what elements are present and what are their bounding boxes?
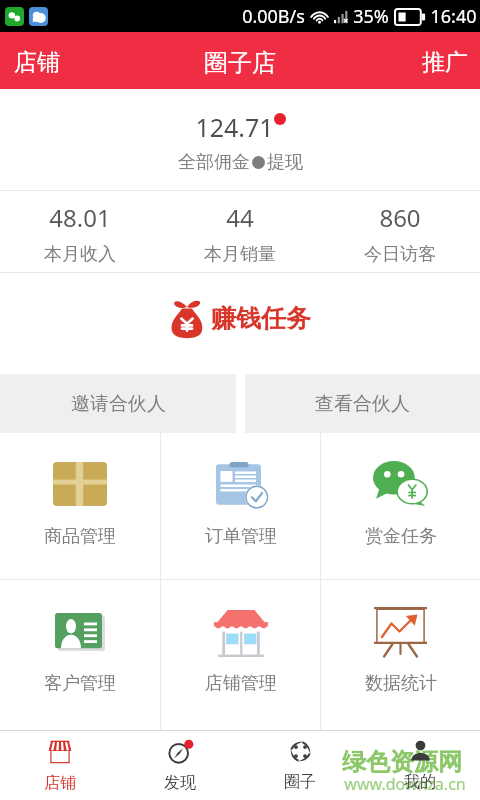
staticText: 数据统计 [365,672,437,695]
button[interactable]: 商品管理 [0,433,160,579]
button[interactable]: 邀请合伙人 [0,374,236,433]
button[interactable]: 发现 [120,731,240,800]
button[interactable]: 数据统计 [321,580,480,730]
staticText: 店铺 [44,773,76,793]
staticText: 48.01 [49,201,111,234]
staticText: 圈子店 [204,48,276,78]
button[interactable]: 店铺 [0,731,120,800]
button[interactable]: 44 [160,191,320,272]
staticText: 今日访客 [364,243,436,266]
staticText: 推广 [422,48,468,77]
button[interactable]: 全部佣金 [178,151,303,174]
staticText: 邀请合伙人 [71,392,166,416]
button[interactable]: 推广 [408,32,480,89]
button[interactable]: 我的 [360,731,480,800]
button[interactable]: 店铺 [0,32,74,89]
staticText: 提现 [267,151,303,174]
button[interactable]: 客户管理 [0,580,160,730]
button[interactable]: 赚钱任务 [151,287,329,351]
staticText: 商品管理 [44,525,116,548]
staticText: 35% [353,4,389,29]
staticText: 124.71 [195,110,274,144]
button[interactable]: 赏金任务 [321,433,480,579]
staticText: 店铺 [14,48,60,77]
staticText: 赏金任务 [365,525,437,548]
staticText: 店铺管理 [205,672,277,695]
staticText: 0.00B/s [242,4,305,29]
button[interactable]: 860 [320,191,480,272]
staticText: 客户管理 [44,672,116,695]
staticText: 绿色资源网 [342,747,462,777]
staticText: www.downza.cn [344,773,466,795]
staticText: 860 [379,201,421,234]
staticText: 发现 [164,773,196,793]
staticText: 订单管理 [205,525,277,548]
staticText: 本月收入 [44,243,116,266]
staticText: 44 [226,201,254,234]
staticText: 16:40 [430,4,477,29]
staticText: 查看合伙人 [315,392,410,416]
button[interactable]: 订单管理 [161,433,320,579]
staticText: 本月销量 [204,243,276,266]
staticText: 我的 [404,772,436,792]
button[interactable]: 店铺管理 [161,580,320,730]
button[interactable]: 查看合伙人 [245,374,480,433]
staticText: 赚钱任务 [211,303,311,334]
staticText: 全部佣金 [178,151,250,174]
staticText: 圈子 [284,772,316,792]
button[interactable]: 48.01 [0,191,160,272]
button[interactable]: 圈子 [240,731,360,800]
